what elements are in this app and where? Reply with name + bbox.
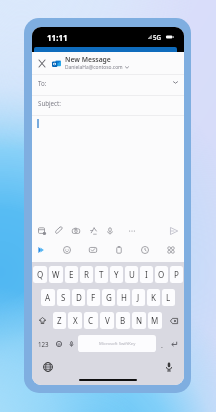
staticText: Z — [57, 315, 62, 326]
button[interactable]: C — [84, 312, 98, 329]
staticText: I — [145, 269, 148, 280]
button[interactable]: 123 — [35, 335, 52, 352]
button[interactable]: Change language — [41, 360, 54, 373]
staticText: 11:11 — [47, 32, 68, 43]
staticText: Microsoft SwiftKey — [99, 341, 136, 347]
staticText: E — [69, 269, 74, 280]
button[interactable]: Attach file — [50, 222, 67, 239]
button[interactable]: Clipboard — [110, 241, 127, 258]
button[interactable]: Keyboard layouts — [162, 241, 179, 258]
staticText: 123 — [38, 340, 49, 348]
button[interactable]: Formatting — [84, 222, 101, 239]
button[interactable]: V — [100, 312, 114, 329]
button[interactable]: Settings — [136, 241, 153, 258]
button[interactable]: K — [147, 289, 160, 306]
button[interactable]: Close — [36, 57, 48, 69]
staticText: 5G — [153, 33, 162, 41]
staticText: DanielaHa@contoso.com — [65, 64, 123, 71]
staticText: X — [73, 315, 78, 326]
button[interactable]: F — [87, 289, 100, 306]
staticText: Q — [37, 269, 44, 280]
button[interactable]: J — [132, 289, 145, 306]
button[interactable]: P — [170, 266, 183, 283]
button[interactable]: M — [148, 312, 162, 329]
button[interactable]: Dictate — [65, 335, 78, 352]
staticText: G — [106, 292, 112, 303]
staticText: M — [151, 315, 159, 326]
button[interactable]: S — [57, 289, 70, 306]
staticText: New Message — [65, 55, 111, 64]
staticText: J — [137, 292, 140, 303]
button[interactable]: Q — [33, 266, 47, 283]
staticText: O — [158, 269, 165, 280]
button[interactable]: Camera — [67, 222, 84, 239]
staticText: Subject: — [38, 99, 61, 107]
button[interactable]: Backspace — [164, 312, 183, 329]
staticText: D — [76, 292, 82, 303]
button[interactable]: Y — [110, 266, 123, 283]
button[interactable]: Shift — [33, 312, 51, 329]
button[interactable]: Period — [156, 335, 167, 352]
button[interactable]: N — [132, 312, 146, 329]
button[interactable]: Z — [53, 312, 66, 329]
button[interactable]: H — [117, 289, 130, 306]
staticText: H — [121, 292, 127, 303]
button[interactable]: R — [80, 266, 93, 283]
button[interactable]: B — [116, 312, 130, 329]
button[interactable]: Insert table — [33, 222, 50, 239]
staticText: W — [52, 269, 60, 280]
button[interactable]: Emoji — [52, 335, 65, 352]
button[interactable]: Stickers — [84, 241, 101, 258]
button[interactable]: E — [65, 266, 78, 283]
button[interactable]: More options — [123, 222, 140, 239]
staticText: A — [45, 292, 51, 303]
button[interactable]: I — [140, 266, 153, 283]
button[interactable]: Voice input — [162, 360, 175, 373]
button[interactable]: W — [49, 266, 63, 283]
staticText: B — [120, 315, 126, 326]
staticText: T — [99, 269, 104, 280]
button[interactable]: U — [125, 266, 138, 283]
button[interactable]: Microsoft SwiftKey — [78, 335, 156, 352]
button[interactable]: G — [102, 289, 115, 306]
staticText: To: — [38, 79, 47, 87]
button[interactable]: Dictate — [101, 222, 118, 239]
button[interactable]: O — [155, 266, 168, 283]
staticText: S — [61, 292, 66, 303]
staticText: V — [105, 315, 110, 326]
staticText: Y — [114, 269, 119, 280]
button[interactable]: Copilot — [32, 241, 49, 258]
button[interactable]: T — [95, 266, 108, 283]
button[interactable]: L — [162, 289, 175, 306]
staticText: U — [129, 269, 135, 280]
button[interactable]: Emoji — [58, 241, 75, 258]
button[interactable]: Enter — [167, 335, 181, 352]
staticText: L — [166, 292, 171, 303]
staticText: P — [174, 269, 179, 280]
staticText: F — [91, 292, 96, 303]
staticText: C — [88, 315, 94, 326]
button[interactable]: Send — [167, 224, 180, 237]
staticText: N — [136, 315, 143, 326]
staticText: R — [84, 269, 89, 280]
staticText: K — [151, 292, 156, 303]
staticText: . — [161, 341, 163, 351]
button[interactable]: D — [72, 289, 85, 306]
button[interactable]: X — [68, 312, 82, 329]
button[interactable]: A — [41, 289, 55, 306]
